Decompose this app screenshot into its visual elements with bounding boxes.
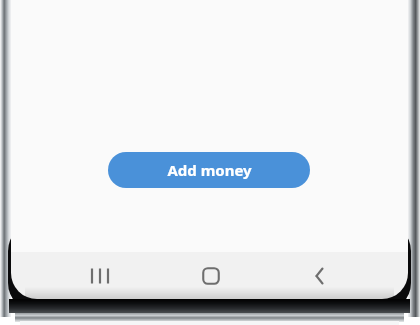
button[interactable]: Recents [82,262,118,290]
button[interactable]: Add money [108,152,310,188]
staticText: Add money [167,160,252,180]
button[interactable]: Home [193,262,229,290]
button[interactable]: Back [303,262,339,290]
